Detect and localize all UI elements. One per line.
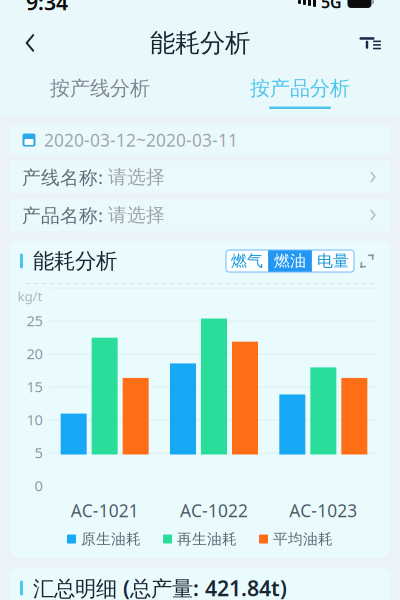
button[interactable]: 按产线分析 — [0, 66, 200, 115]
button[interactable]: Back — [8, 21, 52, 65]
button[interactable]: 产线名称: — [10, 161, 390, 193]
staticText: 0 — [34, 476, 42, 495]
button[interactable]: 燃油 — [269, 250, 311, 272]
staticText: 原生油耗 — [81, 530, 141, 548]
staticText: 5 — [34, 443, 42, 462]
button[interactable]: 按产品分析 — [200, 66, 400, 115]
button[interactable]: 燃气 — [226, 250, 268, 272]
staticText: 再生油耗 — [177, 530, 237, 548]
staticText: 电量 — [317, 251, 349, 271]
staticText: 汇总明细 (总产量: 421.84t) — [33, 574, 287, 600]
staticText: 9:34 — [26, 0, 68, 16]
staticText: AC-1023 — [289, 499, 357, 522]
staticText: 按产线分析 — [50, 76, 150, 101]
button[interactable]: 2020-03-12~2020-03-11 — [10, 125, 390, 155]
staticText: 2020-03-12~2020-03-11 — [44, 128, 238, 151]
staticText: 产品名称: — [22, 203, 108, 227]
staticText: 产线名称: — [22, 165, 108, 189]
staticText: 请选择 — [108, 166, 165, 188]
staticText: 燃气 — [231, 251, 263, 271]
staticText: 10 — [26, 410, 42, 429]
button[interactable]: Filter — [348, 21, 392, 65]
button[interactable]: 电量 — [312, 250, 354, 272]
staticText: 25 — [26, 311, 42, 330]
staticText: 燃油 — [274, 251, 306, 271]
staticText: 按产品分析 — [250, 76, 350, 101]
staticText: 请选择 — [108, 204, 165, 226]
staticText: 15 — [26, 377, 42, 396]
staticText: 20 — [26, 344, 42, 363]
staticText: kg/t — [17, 287, 42, 305]
button[interactable]: Expand chart — [354, 248, 380, 274]
staticText: AC-1021 — [71, 499, 139, 522]
button[interactable]: 产品名称: — [10, 199, 390, 231]
staticText: 平均油耗 — [273, 530, 333, 548]
staticText: AC-1022 — [180, 499, 248, 522]
staticText: 能耗分析 — [33, 248, 117, 274]
staticText: 5G — [321, 0, 342, 12]
staticText: 能耗分析 — [150, 27, 250, 58]
